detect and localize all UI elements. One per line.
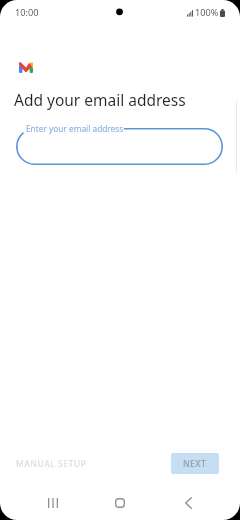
button[interactable]: Back [170,485,206,520]
staticText: 100% [195,6,219,19]
staticText: Add your email address [14,89,186,110]
button[interactable]: Recent apps [35,485,71,520]
button[interactable]: MANUAL SETUP [8,452,95,476]
staticText: NEXT [183,458,207,470]
button[interactable]: NEXT [171,453,219,474]
staticText: 10:00 [15,6,39,19]
staticText: MANUAL SETUP [16,458,87,470]
button[interactable]: Enter your email address [16,128,223,165]
staticText: Enter your email address [26,123,124,134]
button[interactable]: Home [102,485,138,520]
